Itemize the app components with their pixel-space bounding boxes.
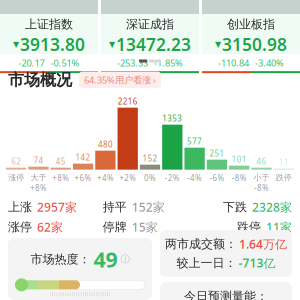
- staticText: 101: [232, 154, 247, 165]
- staticText: +6%: [75, 173, 92, 183]
- staticText: -6%: [209, 173, 224, 183]
- staticText: 涨停: [8, 173, 24, 182]
- staticText: ›: [153, 74, 156, 86]
- staticText: 今日预测量能：: [184, 289, 268, 300]
- staticText: 577: [187, 136, 202, 147]
- staticText: ▼: [109, 40, 115, 49]
- staticText: +8%: [52, 173, 69, 183]
- staticText: 停牌: [103, 220, 127, 234]
- staticText: 3913.80: [20, 33, 85, 56]
- staticText: 下跌: [223, 200, 247, 214]
- staticText: 11家: [266, 219, 292, 235]
- staticText: -0.51%: [50, 57, 79, 69]
- staticText: -4%: [187, 173, 202, 183]
- staticText: 152家: [132, 199, 165, 215]
- staticText: 45: [56, 156, 66, 167]
- staticText: 62: [11, 156, 21, 167]
- staticText: 0%: [144, 173, 156, 183]
- staticText: ⓘ: [120, 253, 129, 265]
- staticText: 74: [33, 155, 43, 166]
- staticText: 两市成交额：: [165, 237, 237, 251]
- staticText: 2957家: [37, 199, 77, 215]
- staticText: -20.17: [18, 57, 44, 69]
- staticText: 480: [98, 139, 113, 150]
- staticText: 市场热度：: [30, 252, 90, 266]
- staticText: 2216: [118, 96, 138, 107]
- staticText: 64.35%用户看涨: [84, 74, 151, 86]
- staticText: -8%: [232, 173, 247, 183]
- button[interactable]: 深证成指: [101, 0, 199, 54]
- staticText: 251: [209, 148, 224, 159]
- button[interactable]: 今日预测量能：: [160, 282, 292, 300]
- staticText: 49: [93, 245, 117, 273]
- button[interactable]: 创业板指: [202, 0, 300, 54]
- staticText: 跌停: [276, 173, 292, 182]
- staticText: 创业板指: [227, 17, 275, 32]
- staticText: -253.33: [117, 57, 148, 69]
- staticText: 62家: [37, 219, 63, 235]
- button[interactable]: 市场热度：: [8, 238, 152, 300]
- staticText: ▼: [215, 40, 221, 49]
- staticText: 大于: [30, 173, 46, 182]
- button[interactable]: 64.35%用户看涨: [79, 72, 161, 88]
- staticText: 152: [142, 153, 157, 164]
- staticText: 深证成指: [126, 17, 174, 32]
- staticText: 持平: [103, 200, 127, 214]
- staticText: 较上一日：: [176, 256, 236, 270]
- staticText: 2328家: [252, 199, 292, 215]
- staticText: 涨停: [8, 220, 32, 234]
- staticText: 11: [279, 157, 289, 168]
- staticText: 上证指数: [25, 17, 73, 32]
- staticText: 142: [76, 152, 91, 163]
- staticText: -2%: [165, 173, 180, 183]
- staticText: 跌停: [237, 220, 261, 234]
- staticText: +8%: [30, 182, 47, 193]
- button[interactable]: 两市成交额：: [160, 230, 292, 277]
- staticText: 上涨: [8, 200, 32, 214]
- staticText: -110.84: [218, 57, 249, 69]
- staticText: 3150.98: [222, 33, 287, 56]
- staticText: 市场概况: [8, 70, 72, 90]
- staticText: ▼: [13, 40, 19, 49]
- staticText: +4%: [97, 173, 114, 183]
- button[interactable]: 上证指数: [0, 0, 98, 54]
- staticText: +2%: [119, 173, 136, 183]
- staticText: -3.40%: [255, 57, 284, 69]
- staticText: -1.85%: [154, 57, 183, 69]
- staticText: 小于: [253, 173, 269, 182]
- staticText: -713亿: [238, 255, 275, 271]
- staticText: 1.64万亿: [239, 236, 287, 252]
- staticText: 46: [256, 156, 266, 167]
- staticText: 13472.23: [116, 33, 191, 56]
- staticText: -8%: [254, 182, 269, 193]
- staticText: 1353: [162, 113, 182, 124]
- staticText: 15家: [132, 219, 158, 235]
